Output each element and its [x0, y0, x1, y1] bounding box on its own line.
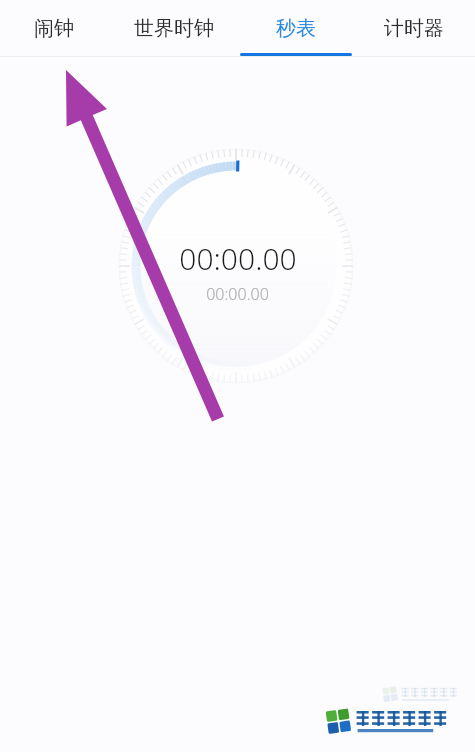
button[interactable]: 秒表 [240, 0, 352, 56]
staticText: 闹钟 [34, 16, 74, 41]
staticText: 世界时钟 [134, 16, 214, 41]
button[interactable]: 闹钟 [0, 0, 107, 56]
button[interactable]: 世界时钟 [107, 0, 240, 56]
staticText: 计时器 [384, 16, 444, 41]
staticText: 00:00.00 [179, 238, 297, 279]
staticText: 秒表 [276, 16, 316, 41]
staticText: 00:00.00 [206, 283, 269, 305]
button[interactable]: 计时器 [352, 0, 475, 56]
